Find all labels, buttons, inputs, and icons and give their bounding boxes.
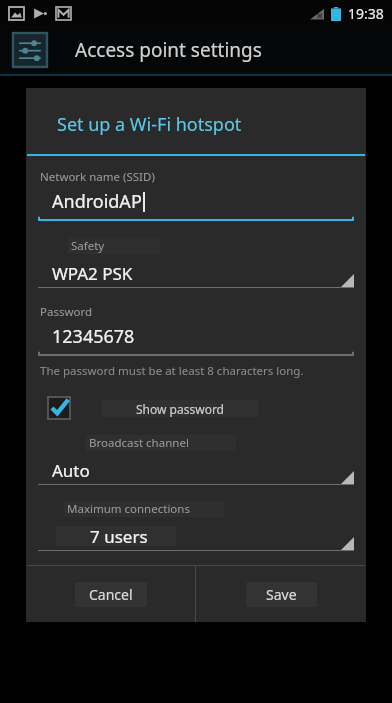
staticText: 12345678	[52, 324, 135, 349]
staticText: 19:38	[348, 4, 384, 23]
other: App icon	[13, 33, 47, 67]
staticText: WPA2 PSK	[52, 262, 133, 285]
button[interactable]: Auto	[38, 456, 354, 485]
staticText: 7 users	[90, 525, 148, 548]
button[interactable]: Cancel	[26, 566, 195, 622]
staticText: Access point settings	[75, 37, 262, 63]
staticText: Cancel	[89, 585, 133, 604]
button[interactable]: WPA2 PSK	[38, 259, 354, 288]
button[interactable]: 7 users	[38, 522, 354, 551]
staticText: Save	[266, 585, 297, 604]
staticText: The password must be at least 8 characte…	[40, 363, 304, 379]
staticText: Network name (SSID)	[40, 169, 155, 185]
staticText: Password	[40, 304, 93, 320]
staticText: Show password	[136, 401, 224, 417]
staticText: Safety	[71, 238, 105, 254]
button[interactable]: AndroidAP	[38, 189, 354, 216]
staticText: Maximum connections	[67, 501, 190, 517]
staticText: Auto	[52, 459, 90, 482]
button[interactable]: Show password	[38, 395, 354, 421]
button[interactable]: 12345678	[38, 324, 354, 351]
button[interactable]: Save	[196, 566, 366, 622]
staticText: Set up a Wi-Fi hotspot	[57, 112, 242, 137]
staticText: Broadcast channel	[89, 435, 189, 451]
staticText: AndroidAP	[52, 189, 142, 214]
